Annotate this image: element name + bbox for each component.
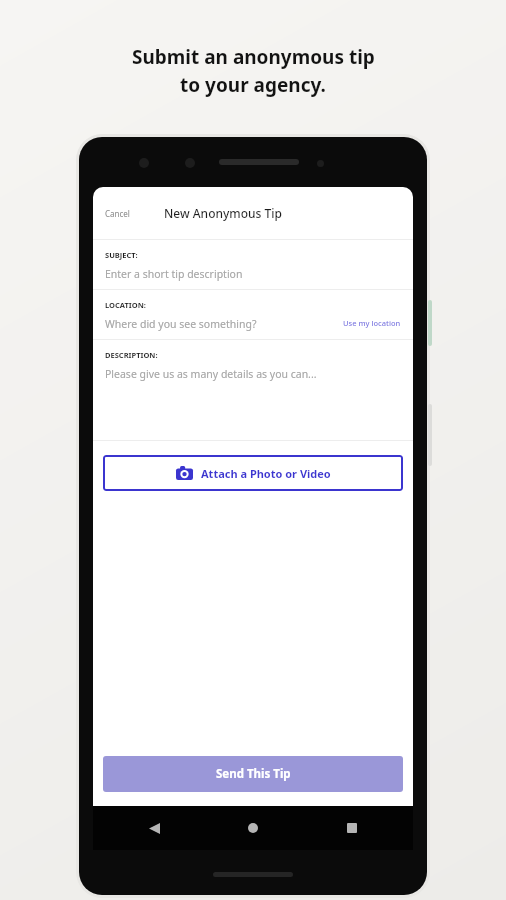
staticText: SUBJECT: xyxy=(105,250,138,260)
staticText: Where did you see something? xyxy=(105,317,257,331)
staticText: to your agency. xyxy=(180,72,326,98)
button[interactable]: DESCRIPTION: xyxy=(93,340,413,440)
staticText: Send This Tip xyxy=(216,766,291,782)
staticText: Enter a short tip description xyxy=(105,267,243,281)
button[interactable]: Recent apps xyxy=(339,815,365,841)
button[interactable]: Cancel xyxy=(101,204,134,223)
staticText: DESCRIPTION: xyxy=(105,350,158,360)
staticText: New Anonymous Tip xyxy=(164,205,282,221)
button[interactable]: LOCATION: xyxy=(93,290,413,339)
staticText: Attach a Photo or Video xyxy=(201,466,331,481)
staticText: Use my location xyxy=(343,318,401,328)
button[interactable]: SUBJECT: xyxy=(93,240,413,289)
button[interactable]: Attach a photo or video xyxy=(103,455,403,491)
button[interactable]: Home xyxy=(240,815,266,841)
staticText: Submit an anonymous tip xyxy=(132,44,375,70)
staticText: Cancel xyxy=(105,208,130,219)
staticText: LOCATION: xyxy=(105,300,146,310)
button[interactable]: Back xyxy=(141,815,167,841)
other: Attach a photo or video xyxy=(176,466,193,480)
button[interactable]: Use my location xyxy=(341,316,403,330)
staticText: Please give us as many details as you ca… xyxy=(105,367,317,381)
button[interactable]: Send This Tip xyxy=(103,756,403,792)
